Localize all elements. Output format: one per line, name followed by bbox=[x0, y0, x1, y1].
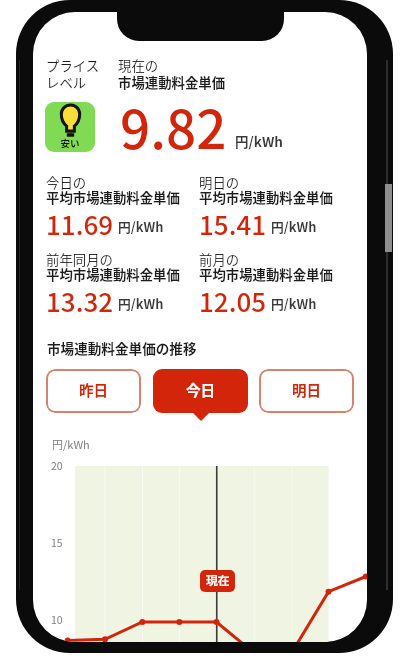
staticText: 円/kWh bbox=[52, 439, 90, 452]
staticText: 現在 bbox=[206, 574, 230, 588]
staticText: 市場連動料金単価の推移 bbox=[47, 341, 197, 357]
staticText: 明日 bbox=[292, 383, 322, 400]
staticText: 市場連動料金単価 bbox=[118, 76, 226, 91]
staticText: 安い bbox=[45, 138, 95, 149]
staticText: 今日の bbox=[46, 176, 87, 191]
staticText: 9.82 bbox=[120, 88, 227, 165]
staticText: 前年同月の bbox=[46, 253, 113, 268]
staticText: 円/kWh bbox=[118, 297, 164, 312]
staticText: 平均市場連動料金単価 bbox=[199, 191, 333, 206]
staticText: 現在の bbox=[118, 59, 159, 74]
staticText: 12.05 bbox=[199, 282, 267, 320]
staticText: 平均市場連動料金単価 bbox=[199, 268, 333, 283]
staticText: 20 bbox=[51, 460, 63, 472]
button[interactable]: 今日 bbox=[153, 369, 248, 413]
staticText: 15.41 bbox=[199, 205, 267, 243]
staticText: 11.69 bbox=[46, 205, 114, 243]
staticText: 今日 bbox=[186, 383, 216, 400]
staticText: 昨日 bbox=[79, 383, 109, 400]
staticText: レベル bbox=[46, 76, 87, 91]
staticText: 13.32 bbox=[46, 282, 114, 320]
staticText: 前月の bbox=[199, 253, 240, 268]
button[interactable]: 昨日 bbox=[46, 369, 141, 413]
staticText: プライス bbox=[46, 59, 100, 74]
staticText: 平均市場連動料金単価 bbox=[46, 191, 180, 206]
button[interactable]: 明日 bbox=[259, 369, 354, 413]
staticText: 明日の bbox=[199, 176, 240, 191]
staticText: 円/kWh bbox=[235, 135, 283, 151]
staticText: 円/kWh bbox=[271, 297, 317, 312]
staticText: 10 bbox=[51, 614, 63, 626]
staticText: 平均市場連動料金単価 bbox=[46, 268, 180, 283]
staticText: 円/kWh bbox=[118, 220, 164, 235]
button[interactable]: プライスレベル 安い bbox=[45, 102, 95, 152]
staticText: 円/kWh bbox=[271, 220, 317, 235]
staticText: 15 bbox=[51, 537, 63, 549]
